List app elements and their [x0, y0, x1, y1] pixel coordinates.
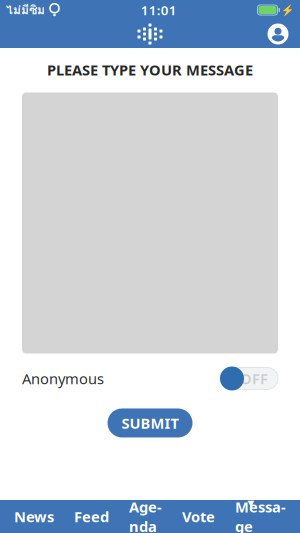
- staticText: ไม่มีซิม: [6, 1, 45, 19]
- staticText: Anonymous: [22, 369, 104, 388]
- staticText: ⚡: [281, 4, 294, 16]
- button[interactable]: Anonymous toggle, off: [220, 366, 278, 390]
- button[interactable]: Feed: [68, 500, 115, 533]
- button[interactable]: Agenda: [123, 500, 168, 533]
- button[interactable]: Profile: [263, 19, 293, 49]
- staticText: PLEASE TYPE YOUR MESSAGE: [47, 60, 253, 79]
- button[interactable]: Vote: [176, 500, 221, 533]
- staticText: OFF: [240, 369, 268, 388]
- button[interactable]: Message: [229, 500, 292, 533]
- staticText: Agenda: [129, 497, 162, 533]
- staticText: News: [14, 507, 54, 526]
- staticText: Feed: [74, 507, 109, 526]
- button[interactable]: News: [8, 500, 60, 533]
- staticText: ▾: [247, 495, 254, 510]
- staticText: 11:01: [141, 1, 177, 19]
- staticText: SUBMIT: [121, 413, 178, 433]
- staticText: Vote: [182, 507, 215, 526]
- button[interactable]: SUBMIT: [107, 408, 192, 437]
- staticText: Message: [235, 497, 286, 533]
